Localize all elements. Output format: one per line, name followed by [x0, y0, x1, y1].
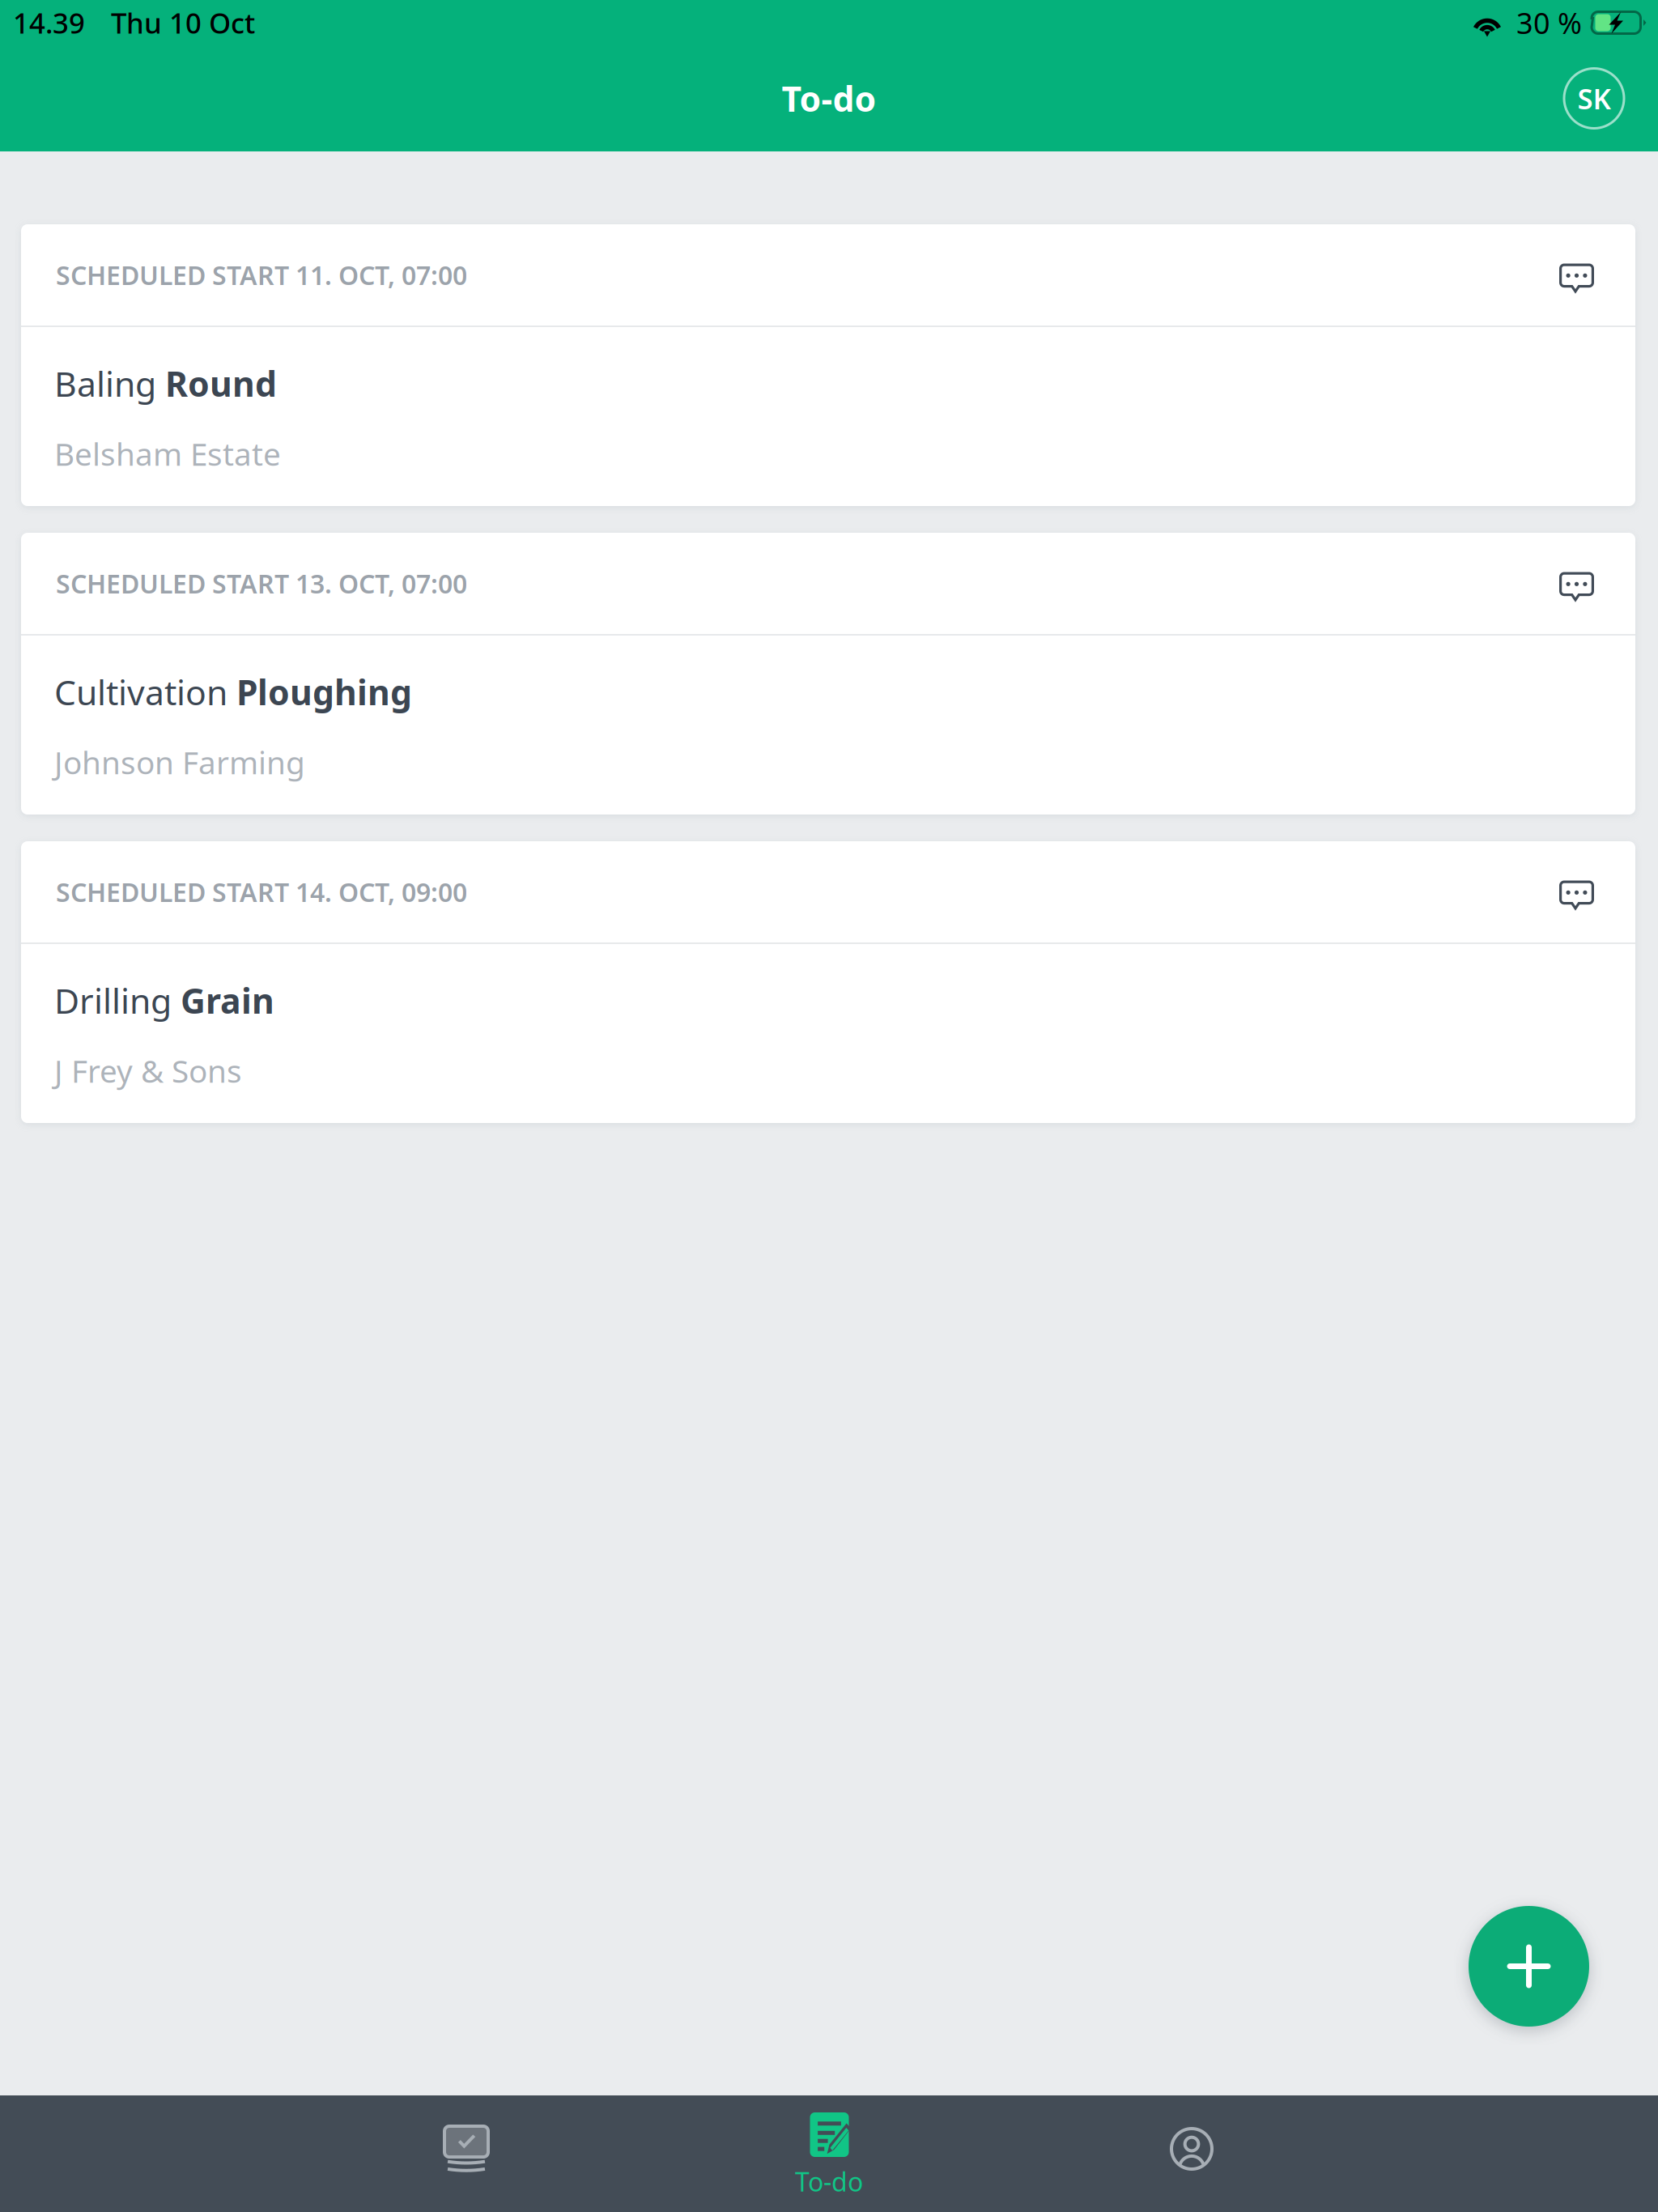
button[interactable]: Profile: [1557, 61, 1631, 136]
staticText: Baling Round: [54, 360, 277, 406]
staticText: To-do: [795, 2164, 863, 2199]
staticText: Belsham Estate: [54, 433, 281, 474]
staticText: SK: [1577, 80, 1611, 117]
staticText: Johnson Farming: [54, 741, 305, 783]
button[interactable]: To-do: [648, 2095, 1010, 2212]
staticText: Thu 10 Oct: [111, 4, 255, 41]
staticText: SCHEDULED START 14. OCT, 09:00: [56, 875, 467, 909]
staticText: 30 %: [1516, 3, 1582, 42]
button[interactable]: Add task: [1469, 1906, 1589, 2027]
staticText: J Frey & Sons: [54, 1050, 242, 1091]
staticText: 14.39: [13, 4, 85, 41]
button[interactable]: SCHEDULED START 14. OCT, 09:00: [21, 841, 1635, 1123]
button[interactable]: SCHEDULED START 13. OCT, 07:00: [21, 533, 1635, 815]
staticText: Drilling Grain: [54, 977, 274, 1023]
button[interactable]: Profile: [1010, 2095, 1373, 2212]
staticText: SCHEDULED START 11. OCT, 07:00: [56, 258, 467, 292]
button[interactable]: Jobs: [285, 2095, 648, 2212]
staticText: To-do: [782, 75, 876, 121]
staticText: SCHEDULED START 13. OCT, 07:00: [56, 566, 467, 601]
staticText: Cultivation Ploughing: [54, 669, 412, 715]
button[interactable]: SCHEDULED START 11. OCT, 07:00: [21, 224, 1635, 506]
